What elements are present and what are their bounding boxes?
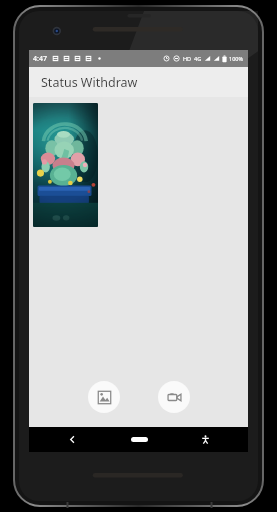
button[interactable]: Back	[52, 427, 92, 452]
button[interactable]: Photo of idol	[33, 103, 98, 227]
staticText: Status Withdraw	[41, 74, 138, 91]
button[interactable]: Pick video	[158, 381, 190, 413]
staticText: 4G	[194, 55, 202, 62]
staticText: 4:47	[33, 54, 47, 64]
staticText: 100%	[229, 55, 244, 62]
button[interactable]: Pick image	[88, 381, 120, 413]
button[interactable]: Home	[115, 427, 163, 452]
button[interactable]: Accessibility	[185, 427, 225, 452]
staticText: HD	[183, 55, 192, 62]
